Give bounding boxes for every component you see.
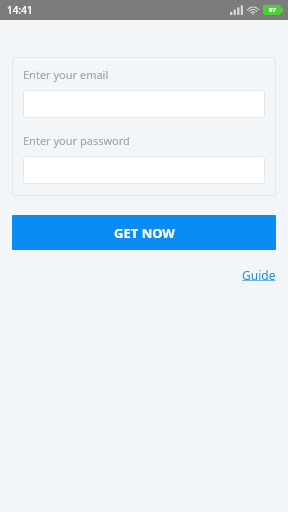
staticText: 97 xyxy=(269,6,276,14)
button[interactable]: Guide xyxy=(242,267,276,283)
staticText: Enter your email xyxy=(23,67,109,82)
button[interactable]: GET NOW xyxy=(12,215,276,250)
staticText: Guide xyxy=(242,267,276,283)
staticText: 14:41 xyxy=(7,3,33,17)
button[interactable] xyxy=(23,156,265,184)
button[interactable] xyxy=(23,90,265,118)
staticText: Enter your password xyxy=(23,133,130,148)
staticText: GET NOW xyxy=(114,224,175,242)
